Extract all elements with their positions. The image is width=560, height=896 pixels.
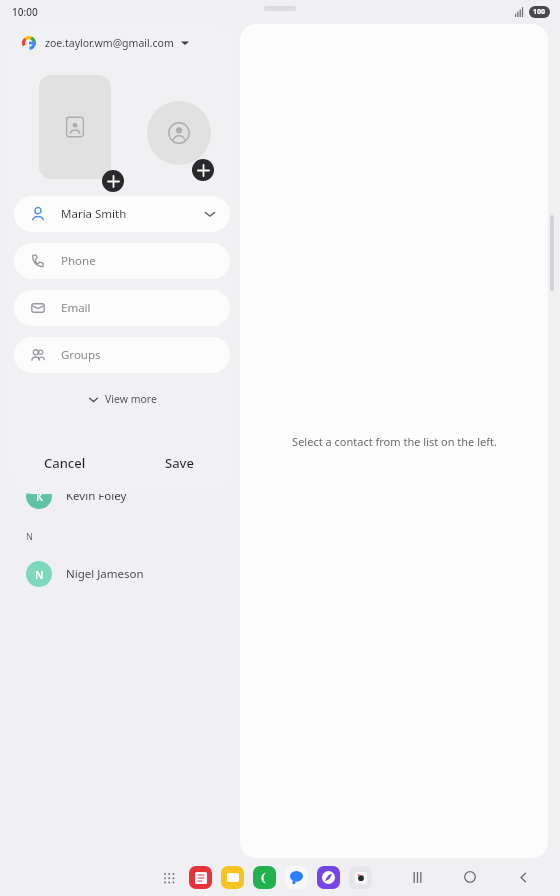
button[interactable]: Add avatar: [192, 159, 214, 181]
button[interactable]: Phone: [14, 243, 230, 279]
button[interactable]: Phone: [253, 866, 276, 889]
staticText: Phone: [61, 253, 96, 269]
staticText: Cancel: [44, 454, 86, 472]
button[interactable]: Cancel: [8, 446, 122, 480]
button[interactable]: K: [0, 476, 240, 516]
staticText: Groups: [61, 347, 101, 363]
staticText: Save: [165, 454, 194, 472]
staticText: View more: [105, 392, 157, 406]
button[interactable]: Internet: [317, 866, 340, 889]
button[interactable]: Back: [508, 862, 538, 892]
button[interactable]: Maria Smith: [14, 196, 230, 232]
button[interactable]: Add avatar: [147, 101, 211, 165]
button[interactable]: N: [0, 554, 240, 594]
staticText: Email: [61, 300, 91, 316]
staticText: 100: [533, 7, 546, 17]
button[interactable]: Camera: [349, 866, 372, 889]
staticText: 10:00: [12, 5, 38, 19]
button[interactable]: Email: [14, 290, 230, 326]
staticText: zoe.taylor.wm@gmail.com: [45, 36, 174, 50]
staticText: N: [35, 567, 44, 582]
button[interactable]: Apps: [158, 867, 180, 889]
staticText: Maria Smith: [61, 206, 127, 222]
button[interactable]: View more: [78, 387, 167, 411]
staticText: Select a contact from the list on the le…: [292, 434, 497, 449]
button[interactable]: Save: [122, 446, 236, 480]
staticText: Kevin Foley: [66, 488, 127, 504]
button[interactable]: My Files: [221, 866, 244, 889]
button[interactable]: Home: [455, 862, 485, 892]
staticText: N: [26, 530, 33, 542]
staticText: K: [36, 489, 43, 504]
button[interactable]: zoe.taylor.wm@gmail.com: [8, 24, 236, 62]
button[interactable]: Notes: [189, 866, 212, 889]
button[interactable]: Messages: [285, 866, 308, 889]
button[interactable]: Add photo: [39, 75, 111, 179]
button[interactable]: Add photo: [102, 170, 124, 192]
staticText: Nigel Jameson: [66, 566, 144, 582]
button[interactable]: Recents: [402, 862, 432, 892]
button[interactable]: Groups: [14, 337, 230, 373]
